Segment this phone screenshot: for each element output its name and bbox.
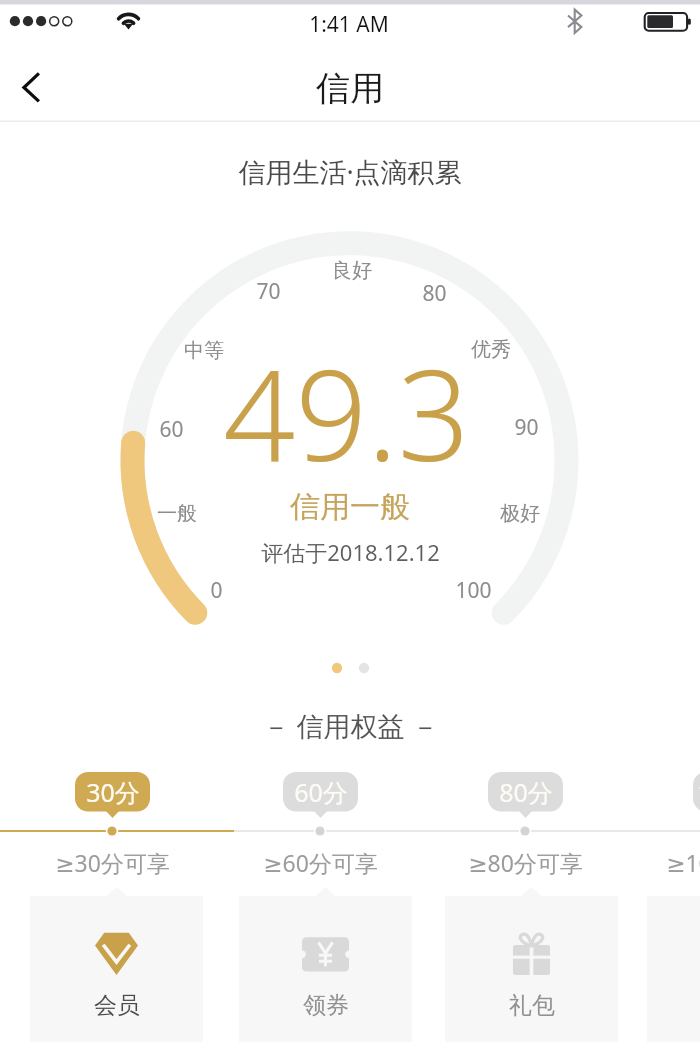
button[interactable]: 礼包 (445, 896, 618, 1042)
button[interactable]: 领券 (239, 896, 412, 1042)
staticText: － 信用权益 － (262, 707, 439, 744)
staticText: 80分 (499, 775, 553, 809)
staticText: 49.3 (223, 326, 470, 498)
button[interactable]: 60分 (283, 772, 358, 818)
staticText: 中等 (184, 338, 224, 363)
staticText: 领券 (303, 991, 349, 1020)
staticText: 信用一般 (290, 488, 410, 526)
staticText: 良好 (332, 258, 372, 283)
staticText: 信用 (316, 67, 384, 110)
staticText: 信用生活·点滴积累 (238, 153, 462, 190)
button[interactable]: 80分 (488, 772, 563, 818)
staticText: ≥60分可享 (263, 847, 378, 878)
staticText: 60分 (294, 775, 348, 809)
staticText: 90 (514, 413, 539, 442)
staticText: 70 (256, 277, 281, 306)
staticText: 1:41 AM (309, 10, 389, 39)
staticText: 礼包 (509, 991, 555, 1020)
staticText: 会员 (94, 991, 140, 1020)
staticText: 60 (159, 415, 184, 444)
staticText: 100分 (697, 775, 700, 809)
staticText: 0 (210, 576, 223, 605)
staticText: 100 (455, 576, 492, 605)
button[interactable]: 30分 (75, 772, 150, 818)
staticText: ≥30分可享 (55, 847, 170, 878)
button[interactable]: Back (0, 52, 62, 122)
staticText: 一般 (157, 501, 197, 526)
button[interactable]: 会员 (30, 896, 203, 1042)
staticText: 评估于2018.12.12 (261, 537, 440, 567)
staticText: ≥80分可享 (468, 847, 583, 878)
staticText: 80 (422, 279, 447, 308)
staticText: ≥100分可享 (666, 847, 700, 878)
staticText: 30分 (86, 775, 140, 809)
staticText: 极好 (500, 501, 540, 526)
staticText: 优秀 (471, 337, 511, 362)
button[interactable]: 100分 (693, 772, 700, 818)
